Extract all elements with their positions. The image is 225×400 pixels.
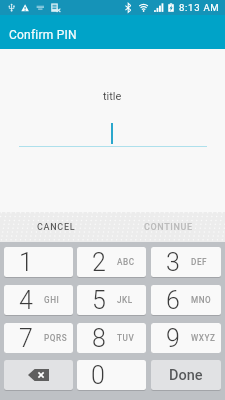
button[interactable]: 6 [151,285,221,315]
staticText: CANCEL [37,222,76,233]
button[interactable]: Done [151,360,221,390]
button[interactable]: CONTINUE [112,212,225,242]
button[interactable]: 4 [4,285,73,315]
staticText: DEF [191,257,208,267]
staticText: title [103,90,122,103]
staticText: GHI [44,295,60,305]
staticText: 1 [19,248,33,277]
button[interactable]: 2 [77,247,146,277]
staticText: 0 [91,361,105,390]
staticText: 7 [19,324,33,353]
button[interactable]: CANCEL [0,212,112,242]
staticText: 9 [166,324,180,353]
staticText: 6 [166,286,180,315]
button[interactable]: Backspace [4,360,73,390]
button[interactable]: 5 [77,285,146,315]
staticText: CONTINUE [144,222,193,233]
staticText: 8 [92,324,106,353]
button[interactable]: 3 [151,247,221,277]
staticText: 3 [166,248,180,277]
button[interactable]: Confirm PIN [0,15,225,49]
button[interactable]: 7 [4,323,73,353]
button[interactable]: 0 [77,360,146,390]
staticText: 4 [19,286,33,315]
staticText: PQRS [44,333,68,343]
button[interactable]: 8 [77,323,146,353]
staticText: Confirm PIN [9,28,77,42]
staticText: 2 [92,248,106,277]
staticText: ABC [117,257,135,267]
staticText: Done [169,367,203,384]
staticText: WXYZ [191,333,216,343]
staticText: MNO [191,295,212,305]
staticText: 8:13 AM [179,2,220,13]
button[interactable]: 1 [4,247,73,277]
staticText: 5 [92,286,106,315]
staticText: JKL [117,295,133,305]
staticText: TUV [117,333,135,343]
button[interactable]: 9 [151,323,221,353]
